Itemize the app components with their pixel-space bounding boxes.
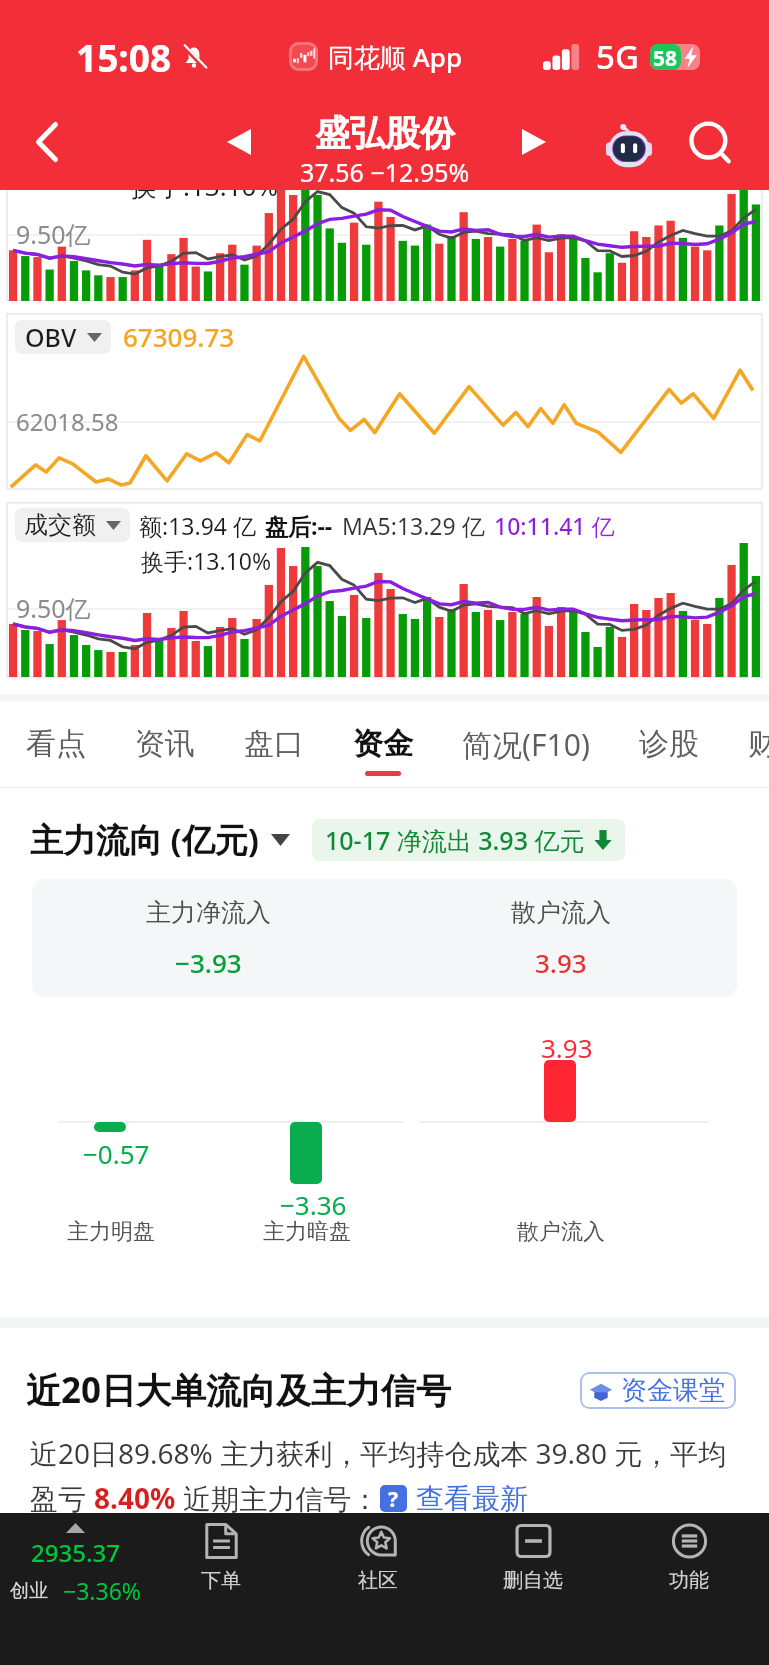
staticText: 删自选 xyxy=(503,1568,563,1593)
button[interactable]: 功能 xyxy=(637,1513,741,1608)
staticText: 盛弘股份 xyxy=(315,111,455,155)
staticText: 主力暗盘 xyxy=(263,1218,351,1246)
staticText: 10:11.41 亿 xyxy=(494,510,615,541)
button[interactable]: 盘口 xyxy=(244,701,304,788)
staticText: 换手:13.10% xyxy=(131,190,279,204)
staticText: 资金课堂 xyxy=(621,1374,725,1407)
button[interactable]: Next stock xyxy=(494,102,574,182)
staticText: 主力流向 (亿元) xyxy=(30,817,259,862)
staticText: 近20日89.68% 主力获利，平均持仓成本 39.80 元，平均 xyxy=(30,1434,727,1472)
staticText: 简况(F10) xyxy=(462,724,590,765)
button[interactable]: 简况(F10) xyxy=(462,701,590,788)
staticText: 主力明盘 xyxy=(67,1218,155,1246)
button[interactable]: 资金 xyxy=(353,701,413,788)
button[interactable]: 10-17 净流出 3.93 亿元 xyxy=(312,819,625,861)
staticText: 近20日大单流向及主力信号 xyxy=(26,1366,452,1414)
staticText: 近期主力信号： xyxy=(176,1479,380,1517)
staticText: 8.40% xyxy=(94,1479,176,1517)
button[interactable]: 删自选 xyxy=(481,1513,585,1608)
staticText: 主力净流入 xyxy=(146,897,271,928)
staticText: 功能 xyxy=(669,1568,709,1593)
button[interactable]: 诊股 xyxy=(639,701,699,788)
staticText: 3.93 xyxy=(535,945,587,980)
staticText: 财 xyxy=(748,725,769,763)
button[interactable]: AI assistant xyxy=(589,106,669,186)
button[interactable]: 成交额 xyxy=(15,508,130,542)
staticText: 盘后:-- xyxy=(265,510,333,541)
staticText: −3.93 xyxy=(175,945,242,980)
staticText: 散户流入 xyxy=(511,897,611,928)
button[interactable]: Search xyxy=(671,105,751,185)
staticText: 9.50亿 xyxy=(16,591,91,625)
staticText: 资金 xyxy=(353,725,413,763)
staticText: 看点 xyxy=(26,725,86,763)
staticText: 盘口 xyxy=(244,725,304,763)
staticText: 额:13.94 亿 xyxy=(139,510,256,541)
button[interactable]: 社区 xyxy=(326,1513,430,1608)
staticText: 诊股 xyxy=(639,725,699,763)
button[interactable]: 资讯 xyxy=(135,701,195,788)
staticText: 9.50亿 xyxy=(16,217,91,251)
staticText: 创业 xyxy=(10,1579,48,1603)
staticText: −3.36 xyxy=(280,1187,347,1222)
button[interactable]: ? xyxy=(380,1485,407,1512)
staticText: 58 xyxy=(653,44,678,70)
button[interactable]: 盛弘股份 xyxy=(280,102,490,197)
staticText: 10-17 净流出 3.93 亿元 xyxy=(325,823,585,857)
staticText: 散户流入 xyxy=(517,1218,605,1246)
staticText: 3.93 xyxy=(541,1030,593,1065)
button[interactable]: 查看最新 xyxy=(416,1481,528,1516)
button[interactable]: 主力流向 (亿元) xyxy=(30,817,290,862)
staticText: 37.56 −12.95% xyxy=(300,155,470,189)
staticText: 资讯 xyxy=(135,725,195,763)
button[interactable]: Previous stock xyxy=(199,102,279,182)
staticText: 62018.58 xyxy=(16,405,119,438)
button[interactable]: Back xyxy=(8,103,86,181)
staticText: ? xyxy=(388,1485,399,1512)
staticText: MA5:13.29 亿 xyxy=(342,510,485,541)
button[interactable]: 财 xyxy=(748,701,769,788)
staticText: 5G xyxy=(596,34,639,79)
staticText: 67309.73 xyxy=(123,319,235,354)
button[interactable]: 2935.37 xyxy=(0,1513,150,1613)
staticText: 换手:13.10% xyxy=(141,545,272,576)
staticText: 15:08 xyxy=(76,32,172,82)
staticText: 成交额 xyxy=(24,510,96,540)
staticText: 同花顺 App xyxy=(328,39,463,75)
staticText: −3.36% xyxy=(63,1575,141,1606)
button[interactable]: 下单 xyxy=(169,1513,273,1608)
staticText: 社区 xyxy=(358,1568,398,1593)
staticText: 下单 xyxy=(201,1568,241,1593)
staticText: −0.57 xyxy=(83,1136,150,1171)
button[interactable]: OBV xyxy=(15,320,111,354)
button[interactable]: 看点 xyxy=(26,701,86,788)
button[interactable]: 资金课堂 xyxy=(580,1372,736,1409)
staticText: 2935.37 xyxy=(31,1536,120,1569)
staticText: OBV xyxy=(25,320,77,354)
staticText: 盈亏 xyxy=(30,1479,94,1517)
